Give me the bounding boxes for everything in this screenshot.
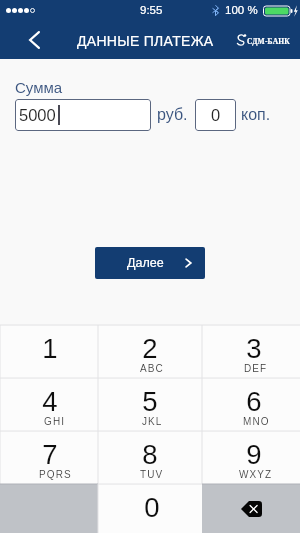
button[interactable]: 1 (0, 325, 98, 378)
button[interactable]: Delete (202, 484, 300, 533)
staticText: DEF (244, 363, 268, 374)
button[interactable]: 5000 (15, 99, 151, 131)
staticText: ДАННЫЕ ПЛАТЕЖА (77, 33, 214, 49)
staticText: WXYZ (239, 469, 273, 480)
button[interactable]: 2 (98, 325, 202, 378)
staticText: 0 (144, 492, 160, 523)
staticText: 7 (42, 439, 58, 470)
staticText: 9:55 (140, 4, 163, 17)
staticText: 6 (246, 386, 262, 417)
staticText: 9 (246, 439, 262, 470)
staticText: руб. (157, 106, 188, 124)
button[interactable]: 9 (202, 431, 300, 484)
button[interactable]: 7 (0, 431, 98, 484)
staticText: MNO (243, 416, 270, 427)
staticText: 2 (142, 333, 158, 364)
button[interactable]: 0 (98, 484, 202, 533)
button[interactable]: 6 (202, 378, 300, 431)
staticText: ABC (140, 363, 164, 374)
staticText: GHI (44, 416, 66, 427)
staticText: TUV (140, 469, 164, 480)
staticText: 0 (211, 106, 221, 124)
button[interactable]: 8 (98, 431, 202, 484)
staticText: 5000 (19, 106, 56, 124)
staticText: Сумма (15, 79, 63, 96)
button[interactable]: Далее (95, 247, 205, 279)
staticText: 3 (246, 333, 262, 364)
button[interactable]: 3 (202, 325, 300, 378)
button[interactable]: 5 (98, 378, 202, 431)
staticText: 4 (42, 386, 58, 417)
staticText: Далее (127, 256, 164, 270)
button[interactable]: Back (0, 20, 48, 59)
staticText: 5 (142, 386, 158, 417)
staticText: PQRS (39, 469, 72, 480)
staticText: 1 (42, 333, 58, 364)
staticText: 100 % (225, 4, 258, 17)
button[interactable]: 0 (195, 99, 236, 131)
button[interactable]: 4 (0, 378, 98, 431)
staticText: JKL (142, 416, 163, 427)
staticText: 8 (142, 439, 158, 470)
staticText: СДМ-БАНК (247, 37, 290, 45)
staticText: коп. (241, 106, 271, 124)
